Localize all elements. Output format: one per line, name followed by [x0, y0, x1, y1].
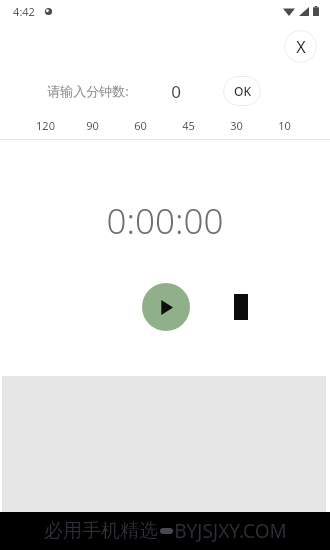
staticText: X	[296, 36, 306, 58]
button[interactable]: 90	[69, 112, 116, 139]
staticText: 120	[36, 118, 55, 133]
button[interactable]: Start timer	[142, 283, 190, 331]
staticText: 45	[182, 118, 195, 133]
staticText: BYJSJXY.COM	[174, 518, 287, 544]
staticText: OK	[234, 83, 251, 99]
staticText: 90	[86, 118, 99, 133]
button[interactable]: 10	[260, 112, 308, 139]
staticText: 30	[230, 118, 243, 133]
button[interactable]: 45	[164, 112, 212, 139]
staticText: 10	[278, 118, 291, 133]
button[interactable]: Stop timer	[226, 283, 256, 331]
button[interactable]: OK	[223, 76, 261, 106]
staticText: 请输入分钟数:	[47, 82, 129, 100]
button[interactable]: Close	[284, 30, 317, 63]
button[interactable]: 60	[116, 112, 164, 139]
button[interactable]: 30	[212, 112, 260, 139]
staticText: 4:42	[13, 4, 35, 19]
staticText: 0	[171, 80, 181, 103]
button[interactable]: 120	[22, 112, 69, 139]
button[interactable]: 0	[162, 76, 190, 106]
staticText: 0:00:00	[106, 197, 224, 245]
staticText: 60	[134, 118, 147, 133]
staticText: 必用手机精选	[44, 519, 158, 543]
